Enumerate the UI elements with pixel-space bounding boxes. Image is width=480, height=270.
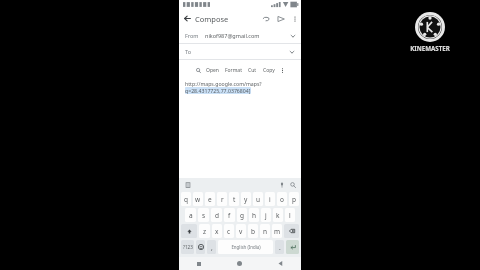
button[interactable]: c [224, 224, 234, 238]
button[interactable]: h [249, 208, 259, 222]
staticText: q=28.4317725,77.0376804] [185, 87, 251, 94]
button[interactable]: Expand recipients [288, 48, 296, 56]
button[interactable]: From [179, 28, 301, 43]
button[interactable]: d [211, 208, 222, 222]
staticText: a [189, 211, 193, 220]
button[interactable]: u [253, 192, 263, 206]
staticText: English (India) [231, 244, 261, 250]
staticText: Format [225, 67, 242, 74]
button[interactable]: j [261, 208, 271, 222]
staticText: From [185, 32, 199, 39]
button[interactable]: p [289, 192, 299, 206]
button[interactable]: Clipboard [183, 180, 192, 189]
button[interactable]: y [241, 192, 251, 206]
staticText: To [185, 48, 192, 55]
staticText: h [252, 211, 257, 220]
staticText: o [280, 195, 284, 204]
button[interactable]: k [273, 208, 283, 222]
staticText: n [263, 227, 268, 236]
button[interactable]: v [236, 224, 246, 238]
staticText: i [269, 195, 271, 204]
button[interactable]: w [193, 192, 203, 206]
staticText: x [215, 227, 219, 236]
button[interactable]: More options [288, 9, 301, 28]
button[interactable]: Format [222, 64, 245, 76]
button[interactable]: x [212, 224, 222, 238]
staticText: s [202, 211, 206, 220]
staticText: z [203, 227, 207, 236]
button[interactable]: f [224, 208, 235, 222]
staticText: r [221, 195, 224, 204]
button[interactable]: a [185, 208, 196, 222]
staticText: w [195, 195, 201, 204]
staticText: . [279, 243, 281, 252]
button[interactable]: Emoji [196, 240, 205, 254]
staticText: e [208, 195, 212, 204]
staticText: c [227, 227, 231, 236]
button[interactable]: g [237, 208, 247, 222]
button[interactable]: b [248, 224, 258, 238]
staticText: Compose [195, 14, 229, 24]
button[interactable]: To [179, 44, 301, 59]
button[interactable]: t [229, 192, 239, 206]
button[interactable]: Enter [286, 240, 299, 254]
button[interactable]: Attach file [258, 9, 273, 28]
staticText: j [265, 211, 267, 220]
button[interactable]: i [265, 192, 275, 206]
button[interactable]: e [205, 192, 215, 206]
staticText: , [211, 243, 213, 252]
button[interactable]: Search web [194, 66, 203, 75]
button[interactable]: Open [203, 64, 222, 76]
button[interactable]: Cut [245, 64, 260, 76]
staticText: nikof987@gmail.com [205, 32, 260, 39]
staticText: u [256, 195, 261, 204]
button[interactable]: n [260, 224, 270, 238]
staticText: q [184, 195, 188, 204]
staticText: KINEMASTER [410, 44, 450, 52]
staticText: t [233, 195, 236, 204]
staticText: y [244, 195, 248, 204]
staticText: http://maps.google.com/maps? [185, 80, 262, 87]
staticText: f [228, 211, 231, 220]
staticText: g [240, 211, 244, 220]
button[interactable]: . [275, 240, 284, 254]
button[interactable]: s [198, 208, 209, 222]
button[interactable]: Copy [260, 64, 278, 76]
button[interactable]: More [278, 66, 287, 75]
staticText: v [239, 227, 243, 236]
button[interactable]: Home [219, 257, 260, 270]
button[interactable]: Send [273, 9, 288, 28]
button[interactable]: Voice input [277, 180, 286, 189]
button[interactable]: Back [179, 9, 195, 28]
button[interactable]: q [181, 192, 191, 206]
button[interactable]: Back [260, 257, 301, 270]
staticText: l [289, 211, 291, 220]
button[interactable]: Search [288, 180, 297, 189]
staticText: b [251, 227, 255, 236]
staticText: Open [206, 67, 219, 74]
staticText: p [292, 195, 296, 204]
staticText: Cut [248, 67, 257, 74]
staticText: ?123 [183, 244, 193, 250]
button[interactable]: Backspace [284, 224, 299, 238]
button[interactable]: English (India) [218, 240, 273, 254]
button[interactable]: Recent apps [179, 257, 219, 270]
button[interactable]: l [285, 208, 295, 222]
button[interactable]: r [217, 192, 227, 206]
button[interactable]: z [199, 224, 210, 238]
staticText: k [276, 211, 280, 220]
button[interactable]: Shift [181, 224, 197, 238]
staticText: m [274, 227, 281, 236]
staticText: d [215, 211, 219, 220]
button[interactable]: , [207, 240, 216, 254]
staticText: Copy [263, 67, 275, 74]
button[interactable]: o [277, 192, 287, 206]
button[interactable]: ?123 [181, 240, 194, 254]
button[interactable]: m [272, 224, 282, 238]
